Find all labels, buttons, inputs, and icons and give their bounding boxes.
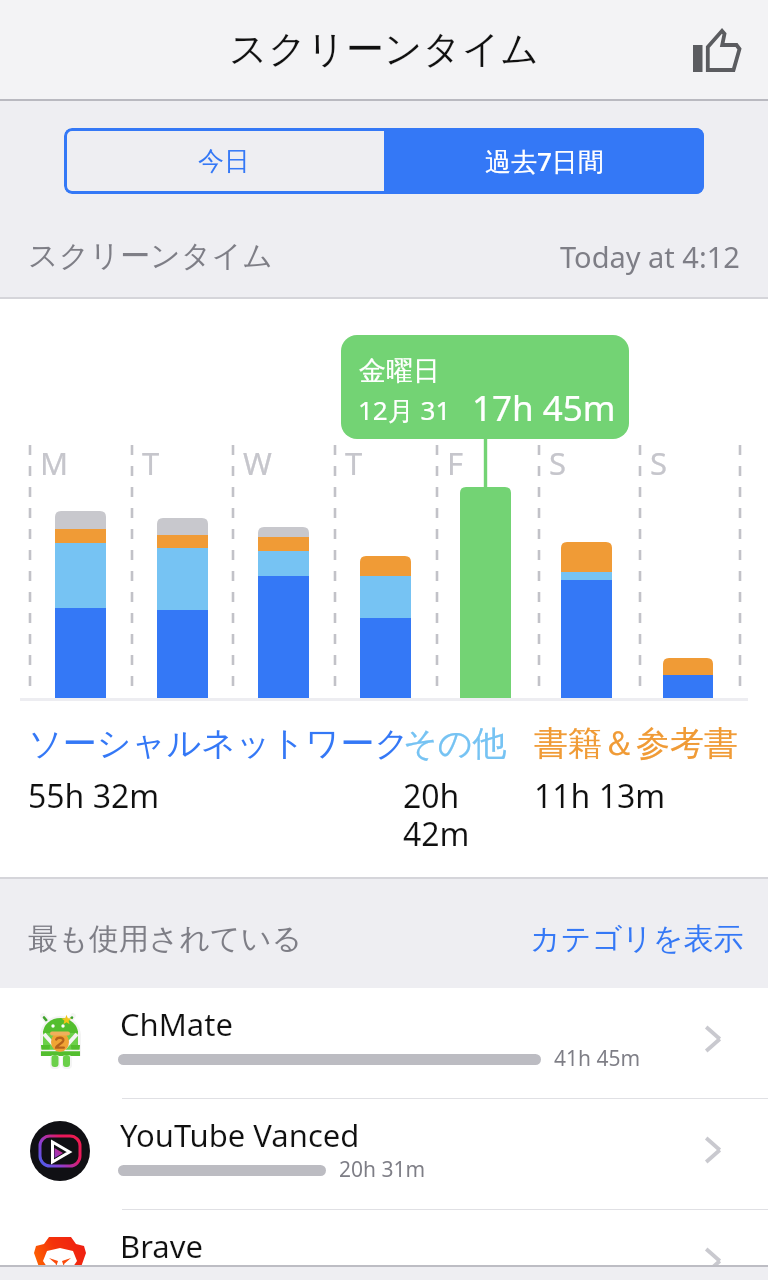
staticText: S [549,442,567,484]
button[interactable]: 金曜日 [341,335,629,439]
button[interactable]: Brave [0,1210,768,1280]
staticText: F [447,442,464,484]
staticText: 11h 13m [534,774,666,818]
staticText: 今日 [198,145,250,178]
other: Details [689,1015,737,1063]
staticText: 金曜日 [359,354,440,388]
staticText: スクリーンタイム [28,237,273,275]
staticText: その他 [403,722,507,765]
staticText: 書籍＆参考書 [534,722,738,765]
staticText: 41h 45m [554,1044,641,1073]
button[interactable]: 今日 [64,128,384,194]
button[interactable]: Like [681,17,753,89]
staticText: スクリーンタイム [229,25,540,73]
staticText: 12月 31 [358,392,451,428]
button[interactable]: ChMate [0,988,768,1099]
staticText: Brave [120,1225,203,1267]
staticText: S [650,442,668,484]
staticText: 20h 42m [403,774,470,855]
button[interactable]: 過去7日間 [384,128,704,194]
staticText: Today at 4:12 [560,237,740,276]
staticText: 20h 31m [339,1155,426,1184]
staticText: カテゴリを表示 [530,920,744,958]
staticText: YouTube Vanced [120,1114,360,1156]
staticText: T [142,442,160,484]
staticText: ソーシャルネットワーク [28,722,410,765]
staticText: 17h 45m [472,384,616,432]
staticText: 最も使用されている [28,920,303,958]
staticText: W [243,442,272,484]
other: Details [689,1126,737,1174]
staticText: 55h 32m [28,774,160,818]
staticText: M [40,442,69,484]
button[interactable]: カテゴリを表示 [530,920,744,958]
button[interactable]: YouTube Vanced [0,1099,768,1210]
other: Details [689,1237,737,1280]
staticText: T [345,442,363,484]
staticText: ChMate [120,1003,233,1045]
button[interactable]: 最も使用されている [28,920,303,958]
staticText: 過去7日間 [485,143,604,179]
